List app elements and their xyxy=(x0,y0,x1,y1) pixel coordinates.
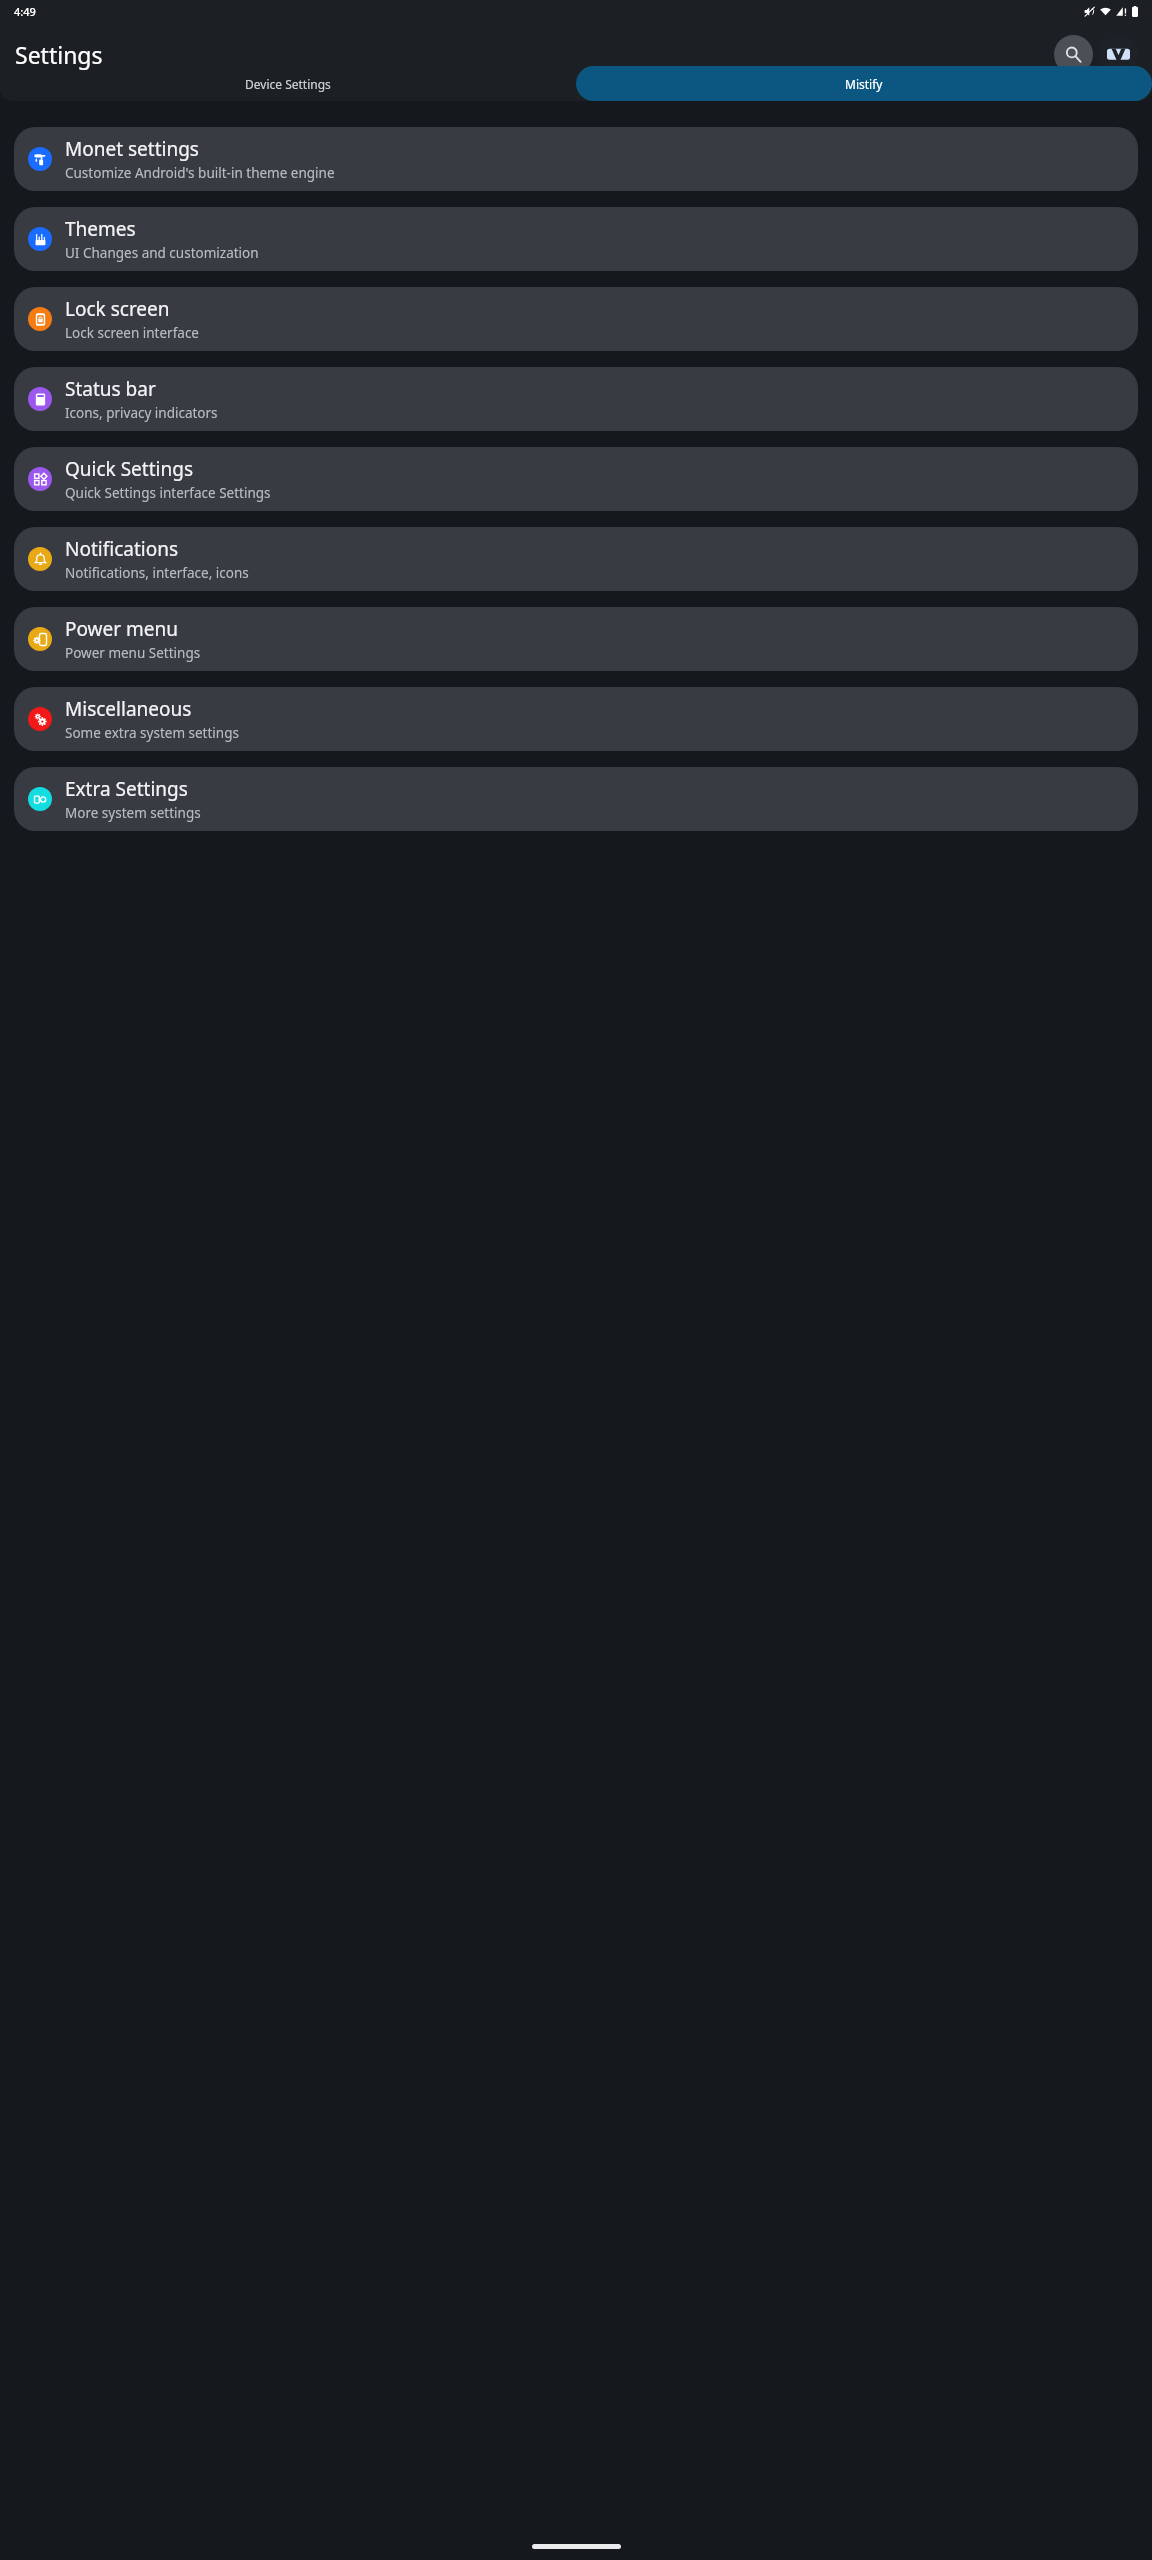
staticText: Settings xyxy=(15,39,103,70)
staticText: Quick Settings interface Settings xyxy=(65,484,271,502)
staticText: Device Settings xyxy=(245,76,331,92)
staticText: Notifications, interface, icons xyxy=(65,564,249,582)
button[interactable]: Lock screen xyxy=(14,287,1138,351)
button[interactable]: Mistify app info xyxy=(1099,35,1138,74)
staticText: Some extra system settings xyxy=(65,724,239,742)
button[interactable]: Themes xyxy=(14,207,1138,271)
staticText: 4:49 xyxy=(14,4,36,19)
staticText: Power menu xyxy=(65,616,179,642)
staticText: Quick Settings xyxy=(65,456,193,482)
staticText: Icons, privacy indicators xyxy=(65,404,218,422)
button[interactable]: Extra Settings xyxy=(14,767,1138,831)
staticText: UI Changes and customization xyxy=(65,244,259,262)
button[interactable]: Miscellaneous xyxy=(14,687,1138,751)
button[interactable]: Quick Settings xyxy=(14,447,1138,511)
staticText: Power menu Settings xyxy=(65,644,201,662)
staticText: Lock screen interface xyxy=(65,324,199,342)
button[interactable]: Mistify xyxy=(576,66,1152,101)
staticText: More system settings xyxy=(65,804,201,822)
button[interactable]: Status bar xyxy=(14,367,1138,431)
staticText: Monet settings xyxy=(65,136,199,162)
staticText: Mistify xyxy=(845,76,883,92)
staticText: Themes xyxy=(65,216,136,242)
button[interactable]: Search xyxy=(1054,35,1093,74)
staticText: Notifications xyxy=(65,536,179,562)
button[interactable]: Power menu xyxy=(14,607,1138,671)
button[interactable]: Monet settings xyxy=(14,127,1138,191)
staticText: Lock screen xyxy=(65,296,170,322)
staticText: Miscellaneous xyxy=(65,696,192,722)
button[interactable]: Device Settings xyxy=(0,66,576,101)
button[interactable]: Notifications xyxy=(14,527,1138,591)
staticText: Customize Android's built-in theme engin… xyxy=(65,164,335,182)
staticText: Status bar xyxy=(65,376,156,402)
staticText: Extra Settings xyxy=(65,776,188,802)
